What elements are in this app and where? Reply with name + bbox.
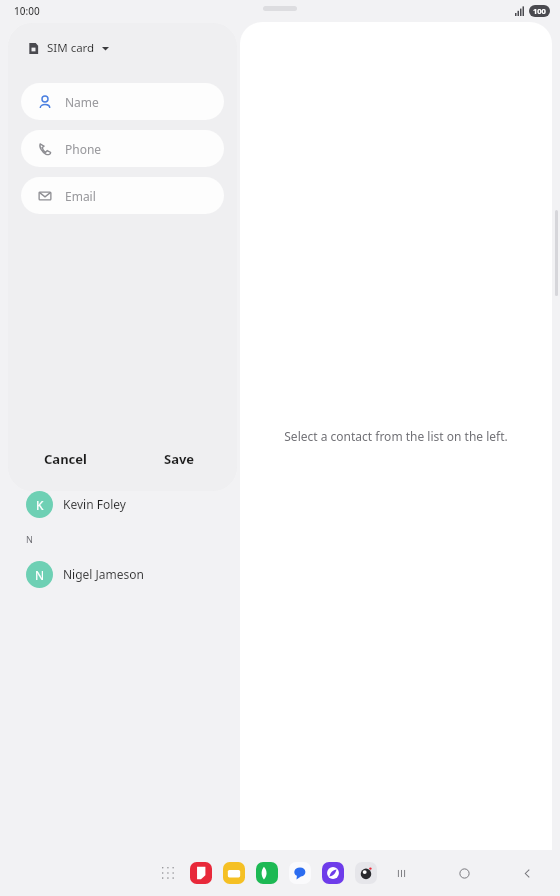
button[interactable]: Phone <box>21 130 224 167</box>
button[interactable]: Cancel <box>8 439 122 479</box>
button[interactable]: Camera <box>353 860 379 886</box>
button[interactable]: Back <box>512 858 542 888</box>
button[interactable]: Save <box>122 439 237 479</box>
button[interactable]: Recents <box>386 858 416 888</box>
staticText: Name <box>65 94 99 110</box>
button[interactable]: Apps <box>155 860 181 886</box>
staticText: N <box>35 567 45 583</box>
button[interactable]: K <box>0 482 240 526</box>
staticText: Select a contact from the list on the le… <box>284 428 508 444</box>
staticText: 10:00 <box>14 4 40 18</box>
button[interactable]: Home <box>449 858 479 888</box>
staticText: Cancel <box>44 450 87 468</box>
staticText: K <box>36 497 44 513</box>
staticText: Email <box>65 188 96 204</box>
button[interactable]: Email <box>21 177 224 214</box>
button[interactable]: Browser <box>320 860 346 886</box>
staticText: Nigel Jameson <box>63 566 145 582</box>
button[interactable]: Messages <box>287 860 313 886</box>
button[interactable]: SIM card <box>22 35 115 61</box>
button[interactable]: Phone <box>254 860 280 886</box>
staticText: N <box>26 533 33 545</box>
staticText: Phone <box>65 141 102 157</box>
staticText: Kevin Foley <box>63 496 126 512</box>
staticText: Save <box>164 450 195 468</box>
staticText: SIM card <box>47 40 95 56</box>
button[interactable]: Name <box>21 83 224 120</box>
button[interactable]: N <box>0 552 240 596</box>
button[interactable]: Files <box>221 860 247 886</box>
staticText: 100 <box>533 6 546 16</box>
button[interactable]: Notes <box>188 860 214 886</box>
